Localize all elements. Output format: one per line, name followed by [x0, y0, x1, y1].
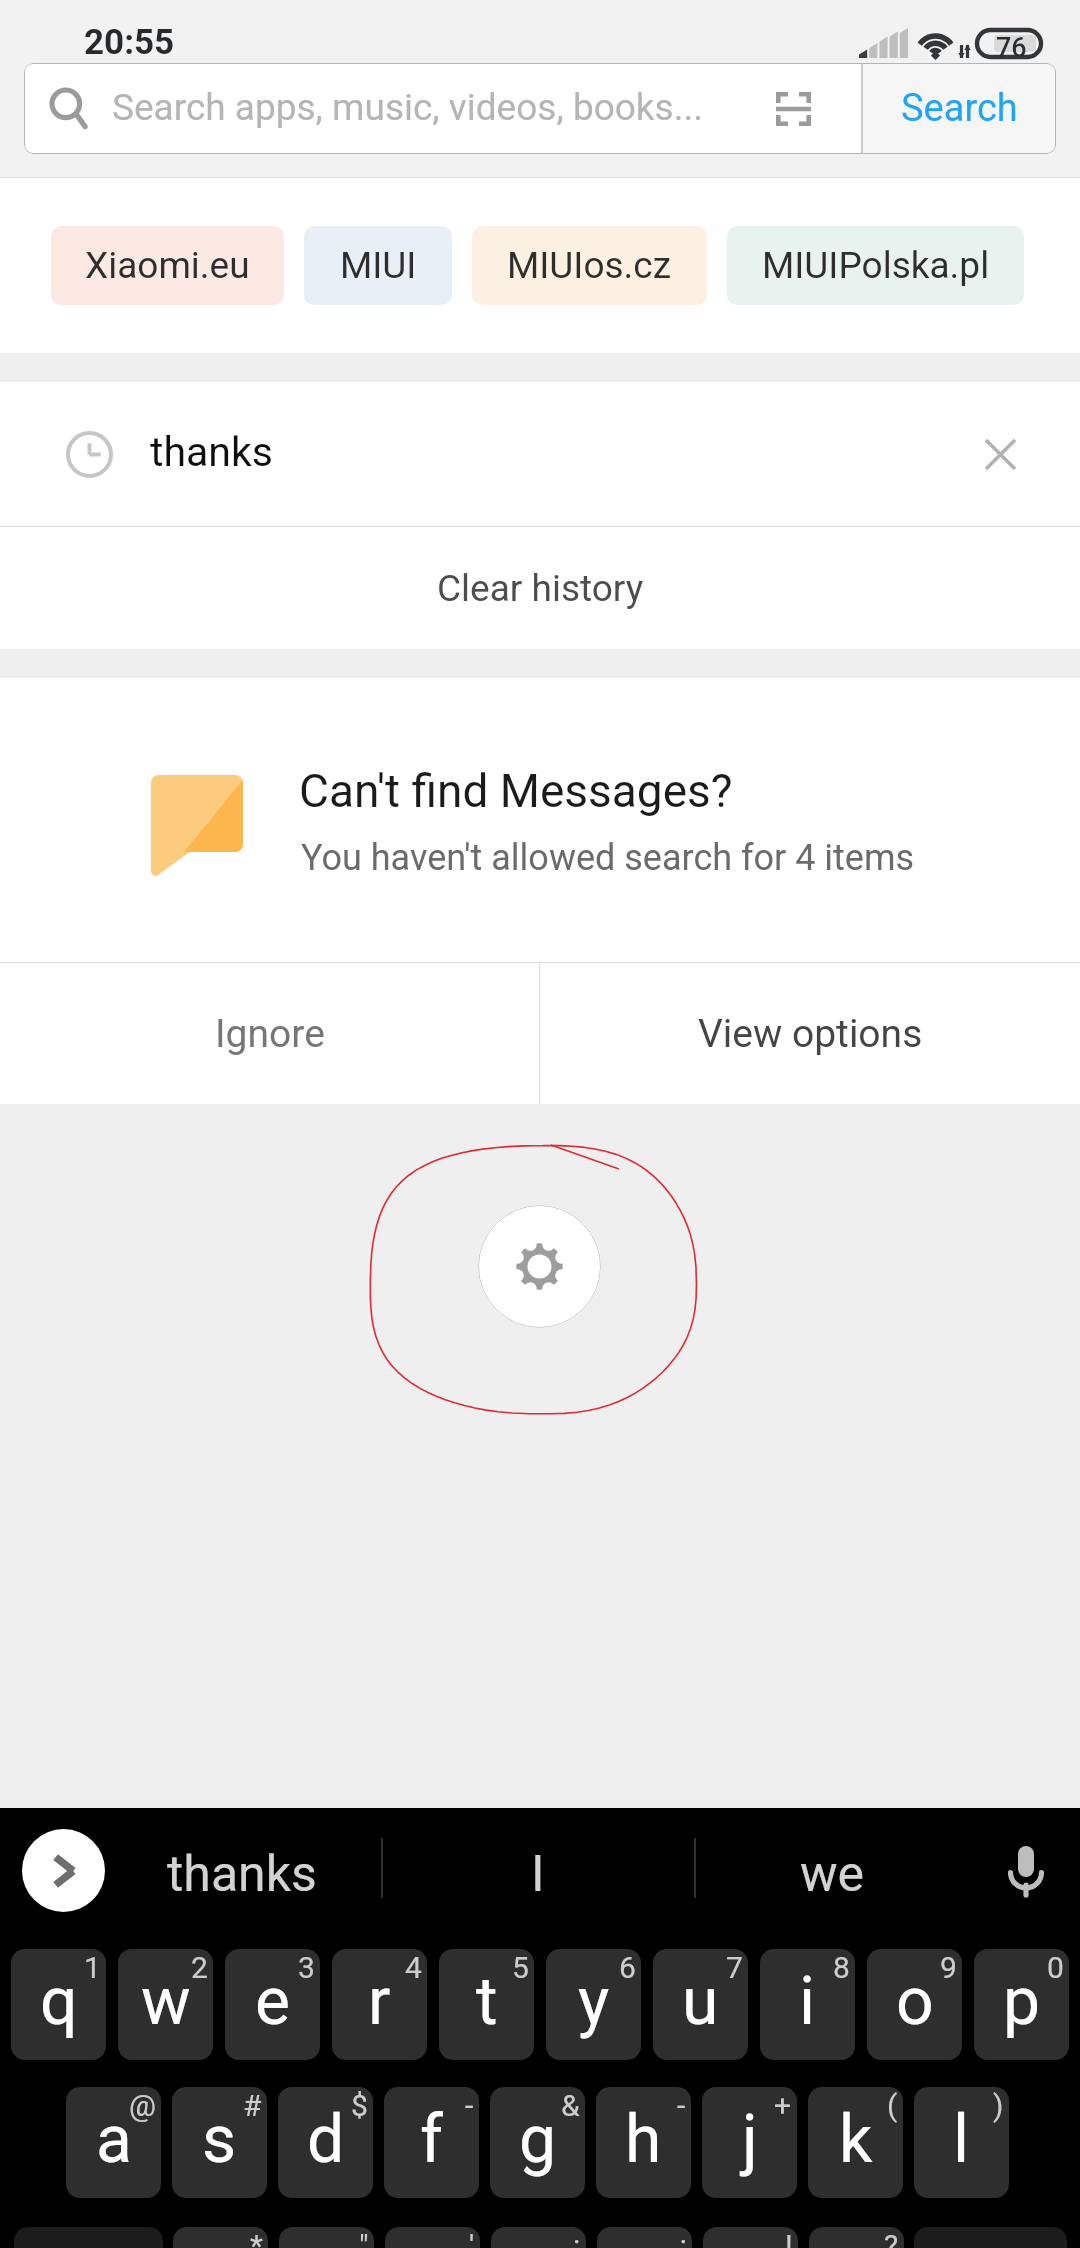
- button[interactable]: v: [491, 2227, 586, 2248]
- button[interactable]: Ignore: [0, 963, 539, 1104]
- button[interactable]: Shift: [14, 2227, 163, 2248]
- staticText: #: [243, 2088, 262, 2123]
- staticText: You haven't allowed search for 4 items: [301, 837, 915, 879]
- staticText: l: [953, 2101, 970, 2178]
- staticText: o: [896, 1963, 934, 2040]
- button[interactable]: x: [279, 2227, 374, 2248]
- staticText: 6: [619, 1950, 636, 1985]
- staticText: 0: [1047, 1950, 1064, 1985]
- staticText: -: [465, 2088, 474, 2123]
- staticText: we: [800, 1845, 865, 1904]
- staticText: k: [839, 2101, 873, 2178]
- button[interactable]: t: [439, 1949, 534, 2060]
- button[interactable]: a: [66, 2087, 161, 2198]
- button[interactable]: k: [808, 2087, 903, 2198]
- staticText: ": [359, 2228, 369, 2248]
- button[interactable]: g: [490, 2087, 585, 2198]
- staticText: MIUIos.cz: [507, 244, 672, 287]
- staticText: q: [40, 1963, 78, 2040]
- button[interactable]: z: [173, 2227, 268, 2248]
- staticText: 3: [298, 1950, 315, 1985]
- staticText: 8: [833, 1950, 850, 1985]
- staticText: :: [573, 2228, 581, 2248]
- button[interactable]: Voice input: [986, 1830, 1066, 1910]
- button[interactable]: m: [809, 2227, 904, 2248]
- staticText: @: [129, 2088, 156, 2123]
- staticText: y: [578, 1963, 610, 2040]
- button[interactable]: MIUIos.cz: [472, 226, 707, 305]
- button[interactable]: Search apps, music, videos, books...: [24, 63, 861, 154]
- button[interactable]: j: [702, 2087, 797, 2198]
- button[interactable]: Remove from history: [964, 418, 1036, 490]
- button[interactable]: View options: [540, 963, 1080, 1104]
- staticText: 1: [84, 1950, 101, 1985]
- button[interactable]: w: [118, 1949, 213, 2060]
- staticText: f: [420, 2101, 443, 2178]
- staticText: u: [682, 1963, 719, 2040]
- staticText: ?: [884, 2228, 899, 2248]
- staticText: w: [141, 1963, 191, 2040]
- button[interactable]: d: [278, 2087, 373, 2198]
- staticText: ': [469, 2228, 475, 2248]
- staticText: MIUI: [340, 244, 417, 287]
- staticText: s: [202, 2101, 237, 2178]
- staticText: g: [519, 2101, 557, 2178]
- button[interactable]: h: [596, 2087, 691, 2198]
- staticText: $: [351, 2088, 368, 2123]
- staticText: h: [625, 2101, 662, 2178]
- button[interactable]: Settings: [478, 1205, 601, 1328]
- button[interactable]: c: [385, 2227, 480, 2248]
- staticText: (: [887, 2088, 898, 2123]
- button[interactable]: i: [760, 1949, 855, 2060]
- staticText: r: [368, 1963, 391, 2040]
- button[interactable]: p: [974, 1949, 1069, 2060]
- button[interactable]: thanks: [0, 382, 1080, 526]
- button[interactable]: y: [546, 1949, 641, 2060]
- button[interactable]: MIUIPolska.pl: [727, 226, 1024, 305]
- button[interactable]: More suggestions: [22, 1829, 105, 1912]
- button[interactable]: Xiaomi.eu: [51, 226, 284, 305]
- button[interactable]: s: [172, 2087, 267, 2198]
- button[interactable]: Clear history: [0, 527, 1080, 649]
- staticText: i: [799, 1963, 816, 2040]
- button[interactable]: Search: [863, 63, 1056, 154]
- staticText: e: [255, 1963, 290, 2040]
- staticText: 4: [405, 1950, 422, 1985]
- staticText: p: [1003, 1963, 1041, 2040]
- staticText: Ignore: [215, 1011, 325, 1057]
- staticText: MIUIPolska.pl: [762, 244, 990, 287]
- staticText: 9: [940, 1950, 957, 1985]
- button[interactable]: q: [11, 1949, 106, 2060]
- staticText: *: [250, 2228, 263, 2248]
- staticText: d: [307, 2101, 345, 2178]
- button[interactable]: b: [597, 2227, 692, 2248]
- button[interactable]: MIUI: [304, 226, 452, 305]
- button[interactable]: Backspace: [914, 2227, 1067, 2248]
- staticText: View options: [698, 1011, 923, 1057]
- staticText: Xiaomi.eu: [85, 244, 250, 287]
- staticText: thanks: [167, 1845, 317, 1904]
- button[interactable]: o: [867, 1949, 962, 2060]
- staticText: Clear history: [437, 567, 644, 610]
- button[interactable]: l: [914, 2087, 1009, 2198]
- button[interactable]: n: [703, 2227, 798, 2248]
- staticText: +: [774, 2088, 792, 2123]
- staticText: ;: [680, 2228, 687, 2248]
- staticText: -: [677, 2088, 686, 2123]
- button[interactable]: r: [332, 1949, 427, 2060]
- button[interactable]: f: [384, 2087, 479, 2198]
- staticText: ): [993, 2088, 1004, 2123]
- button[interactable]: e: [225, 1949, 320, 2060]
- staticText: Search: [901, 86, 1018, 131]
- button[interactable]: Scan code: [752, 68, 834, 150]
- button[interactable]: u: [653, 1949, 748, 2060]
- staticText: 7: [726, 1950, 743, 1985]
- staticText: &: [561, 2088, 580, 2123]
